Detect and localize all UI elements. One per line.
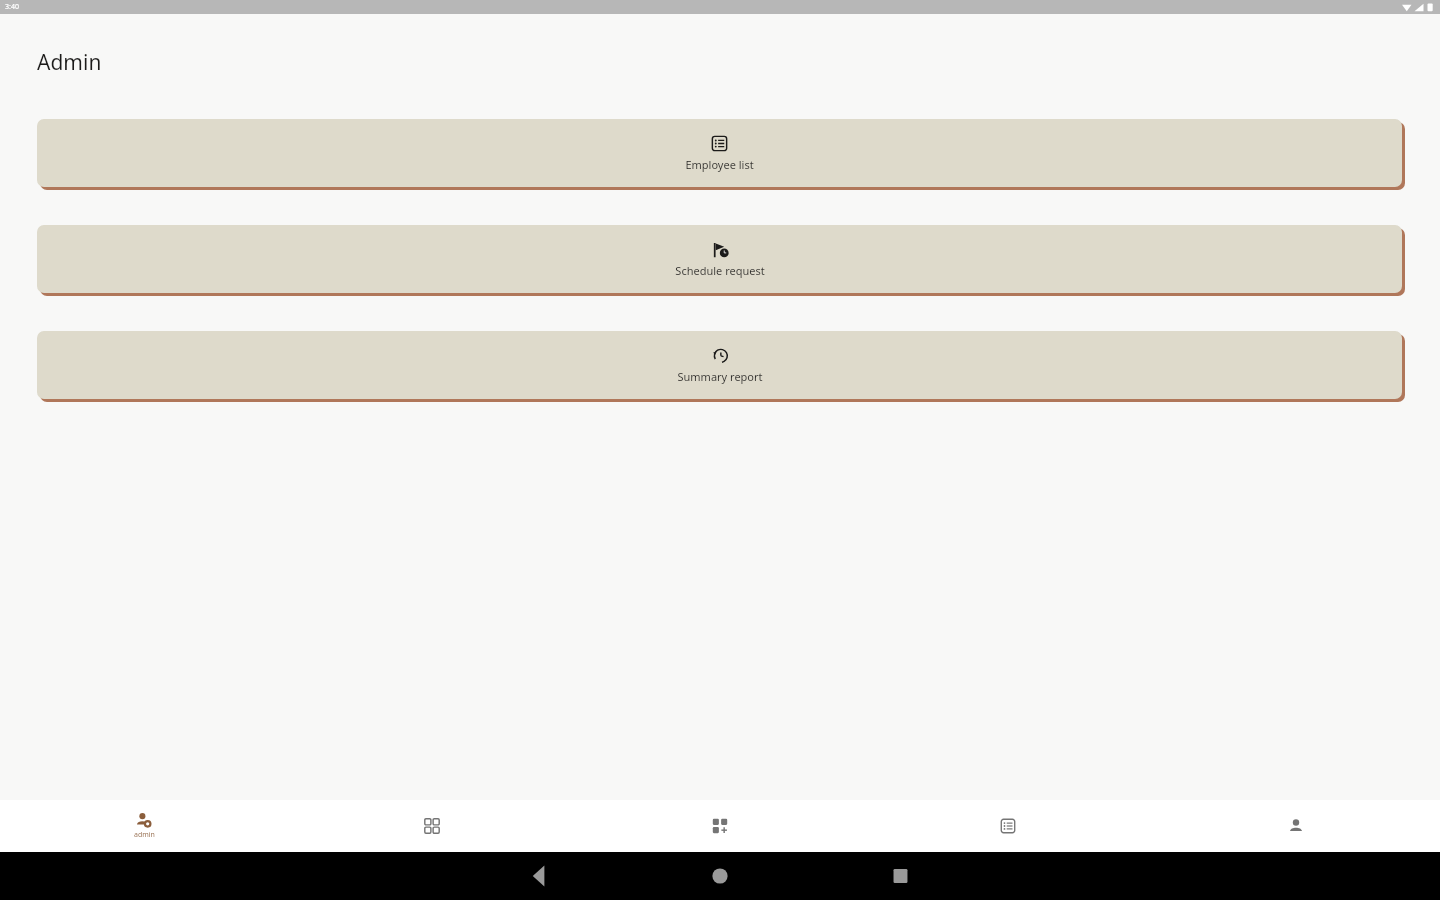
staticText: Schedule request	[675, 263, 765, 278]
button[interactable]: Employee list	[37, 119, 1402, 187]
button[interactable]: Summary report	[37, 331, 1402, 399]
staticText: admin	[134, 830, 155, 840]
staticText: Summary report	[677, 369, 763, 384]
staticText: 3:40	[5, 2, 19, 12]
staticText: Employee list	[685, 157, 754, 172]
button[interactable]: Navigation item	[864, 800, 1152, 852]
button[interactable]: Schedule request	[37, 225, 1402, 293]
button[interactable]: Navigation item	[576, 800, 864, 852]
button[interactable]: Navigation item	[1152, 800, 1440, 852]
staticText: Admin	[37, 48, 102, 77]
button[interactable]: admin	[0, 800, 288, 852]
button[interactable]: Navigation item	[288, 800, 576, 852]
